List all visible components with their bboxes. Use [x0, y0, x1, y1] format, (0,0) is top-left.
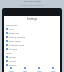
staticText: Apps — [23, 70, 27, 72]
staticText: Sound — [9, 60, 16, 63]
staticText: Mobile network — [9, 36, 26, 39]
staticText: More — [51, 70, 56, 72]
staticText: Data usage — [9, 40, 21, 43]
button[interactable]: Alerts — [32, 67, 46, 72]
button[interactable]: Bluetooth — [4, 31, 60, 35]
staticText: Device — [6, 52, 13, 55]
staticText: Battery — [9, 64, 17, 67]
staticText: Settings screen — [24, 0, 41, 3]
staticText: Wi-Fi — [9, 28, 15, 31]
button[interactable]: Data usage — [4, 39, 60, 43]
staticText: Airplane mode — [9, 44, 25, 47]
button[interactable]: Battery — [4, 63, 60, 67]
staticText: Material Design guideline — [20, 4, 45, 7]
button[interactable]: Wi-Fi — [4, 27, 60, 31]
staticText: Bluetooth — [9, 32, 20, 35]
staticText: Display — [9, 56, 17, 59]
staticText: Settings — [4, 17, 60, 21]
button[interactable]: Display — [4, 55, 60, 59]
staticText: Alerts — [37, 70, 42, 72]
staticText: Home — [9, 70, 14, 72]
button[interactable]: More — [46, 67, 60, 72]
button[interactable]: Apps — [18, 67, 32, 72]
button[interactable]: Home — [4, 67, 18, 72]
staticText: Hotspot — [9, 48, 18, 51]
button[interactable]: Sound — [4, 59, 60, 63]
button[interactable]: Mobile network — [4, 35, 60, 39]
staticText: Connections — [6, 24, 18, 27]
button[interactable]: Hotspot — [4, 47, 60, 51]
button[interactable]: Airplane mode — [4, 43, 60, 47]
